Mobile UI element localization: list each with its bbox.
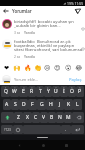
staticText: 5 <box>39 87 41 91</box>
staticText: 1 <box>5 87 7 91</box>
button[interactable]: J <box>55 99 64 110</box>
button[interactable]: ❤️ <box>2 63 11 72</box>
staticText: 🙌 <box>13 64 21 71</box>
button[interactable]: Y <box>44 86 52 97</box>
staticText: U <box>54 88 58 95</box>
staticText: Yorum ekle... <box>14 77 39 82</box>
button[interactable]: S <box>11 99 19 110</box>
button[interactable]: footballdio Bonultnosd ar-çık buqardnas,… <box>0 39 85 58</box>
staticText: X <box>26 114 29 121</box>
button[interactable]: Like <box>80 46 85 51</box>
button[interactable]: ?123 <box>1 125 13 134</box>
button[interactable]: E <box>19 86 28 97</box>
staticText: Y <box>47 88 50 95</box>
staticText: Yorumlar <box>12 8 32 14</box>
staticText: 7 <box>55 87 57 91</box>
button[interactable]: U <box>52 86 60 97</box>
button[interactable]: 😂 <box>74 63 83 72</box>
button[interactable]: Enter <box>71 125 84 134</box>
staticText: Yanıtla <box>24 54 35 58</box>
staticText: O <box>70 88 74 95</box>
staticText: 2 sa <box>14 54 21 58</box>
staticText: 6 <box>47 87 49 91</box>
staticText: Z <box>17 114 20 121</box>
button[interactable]: Back <box>15 141 23 149</box>
staticText: 2 <box>14 87 16 91</box>
staticText: 4 <box>31 87 33 91</box>
button[interactable]: Yanıtla <box>24 30 35 34</box>
button[interactable]: O <box>68 86 76 97</box>
button[interactable]: Back <box>2 7 10 15</box>
staticText: V <box>42 114 46 121</box>
button[interactable]: Home <box>39 141 47 149</box>
button[interactable]: V <box>40 112 48 123</box>
button[interactable]: I <box>60 86 68 97</box>
button[interactable]: biriadsjıfdfl bocaktı uyuhan şın _uubalt… <box>0 19 85 34</box>
button[interactable]: H <box>46 99 55 110</box>
button[interactable]: 😢 <box>43 63 52 72</box>
staticText: K <box>67 101 71 108</box>
button[interactable]: F <box>28 99 37 110</box>
staticText: biriadsjıfdfl bocaktı uyuhan şın _uubalt… <box>14 19 83 29</box>
staticText: F <box>31 101 34 108</box>
staticText: I <box>63 88 65 95</box>
staticText: C <box>34 114 38 121</box>
staticText: T <box>39 88 42 95</box>
staticText: 9 <box>71 87 73 91</box>
button[interactable]: 😮 <box>64 63 73 72</box>
button[interactable]: B <box>48 112 56 123</box>
button[interactable]: Paylaş <box>68 77 83 82</box>
button[interactable]: 🔥 <box>23 63 32 72</box>
staticText: 3 <box>23 87 25 91</box>
button[interactable]: R <box>28 86 36 97</box>
button[interactable]: Recents <box>62 141 70 149</box>
staticText: footballdio Bonultnosd ar-çık buqardnas,… <box>14 39 83 53</box>
staticText: Paylaş <box>69 77 82 82</box>
staticText: G <box>40 101 44 108</box>
button[interactable]: Q <box>1 86 10 97</box>
button[interactable]: P <box>76 86 84 97</box>
staticText: J <box>59 101 61 108</box>
button[interactable]: Share <box>74 7 82 15</box>
staticText: P <box>78 88 82 95</box>
staticText: 3 sa <box>14 30 21 34</box>
staticText: 😢 <box>44 64 51 71</box>
staticText: R <box>30 88 34 95</box>
button[interactable]: 👏 <box>33 63 42 72</box>
staticText: 😂 <box>75 64 83 71</box>
staticText: W <box>12 88 17 95</box>
button[interactable]: L <box>73 99 82 110</box>
staticText: A <box>5 101 9 108</box>
button[interactable]: K <box>64 99 73 110</box>
button[interactable]: A <box>3 99 11 110</box>
button[interactable]: N <box>56 112 64 123</box>
button[interactable]: . <box>61 125 71 134</box>
button[interactable]: 🙌 <box>12 63 21 72</box>
staticText: Yanıtla <box>24 30 35 34</box>
staticText: Q <box>4 88 8 95</box>
button[interactable]: T <box>36 86 44 97</box>
button[interactable]: Backspace <box>72 112 84 123</box>
button[interactable]: Z <box>14 112 23 123</box>
staticText: ?123 <box>4 128 11 132</box>
staticText: 8 <box>63 87 65 91</box>
button[interactable]: G <box>37 99 46 110</box>
button[interactable]: Shift <box>1 112 14 123</box>
staticText: ❤️ <box>4 64 10 71</box>
staticText: 0 <box>79 87 81 91</box>
staticText: 19% 11:55 <box>67 1 84 6</box>
button[interactable]: D <box>19 99 28 110</box>
staticText: B <box>50 114 54 121</box>
button[interactable]: C <box>32 112 40 123</box>
button[interactable]: 😍 <box>53 63 62 72</box>
button[interactable]: M <box>64 112 72 123</box>
staticText: 👏 <box>34 64 42 71</box>
button[interactable]: Like <box>80 26 85 31</box>
button[interactable]: Emoji <box>13 125 23 134</box>
staticText: 😍 <box>54 64 61 71</box>
button[interactable]: Yanıtla <box>24 54 35 58</box>
staticText: M <box>66 114 71 121</box>
button[interactable]: X <box>23 112 32 123</box>
button[interactable]: W <box>10 86 19 97</box>
